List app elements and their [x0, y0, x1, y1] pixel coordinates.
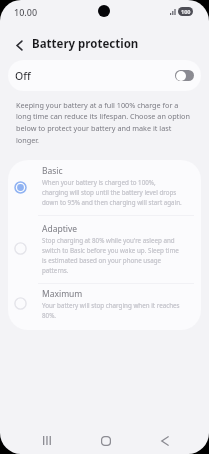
staticText: Maximum	[42, 288, 83, 300]
staticText: Stop charging at 80% while you're asleep…	[42, 236, 183, 275]
button[interactable]: Back	[10, 36, 28, 54]
button[interactable]: Home	[90, 425, 121, 454]
staticText: Basic	[42, 165, 63, 177]
staticText: Battery protection	[32, 36, 139, 52]
button[interactable]: Off	[8, 60, 201, 91]
staticText: Your battery will stop charging when it …	[42, 301, 183, 320]
staticText: Keeping your battery at a full 100% char…	[16, 100, 194, 146]
button[interactable]: Maximum	[8, 283, 201, 329]
staticText: When your battery is charged to 100%, ch…	[42, 178, 183, 207]
button[interactable]: Back	[149, 425, 180, 454]
staticText: 100	[181, 8, 191, 15]
button[interactable]: Recent apps	[31, 425, 62, 454]
button[interactable]: Adaptive	[8, 218, 201, 285]
staticText: Off	[15, 69, 31, 83]
staticText: Adaptive	[42, 223, 78, 235]
button[interactable]: Basic	[8, 160, 201, 215]
staticText: 10.00	[14, 6, 38, 18]
